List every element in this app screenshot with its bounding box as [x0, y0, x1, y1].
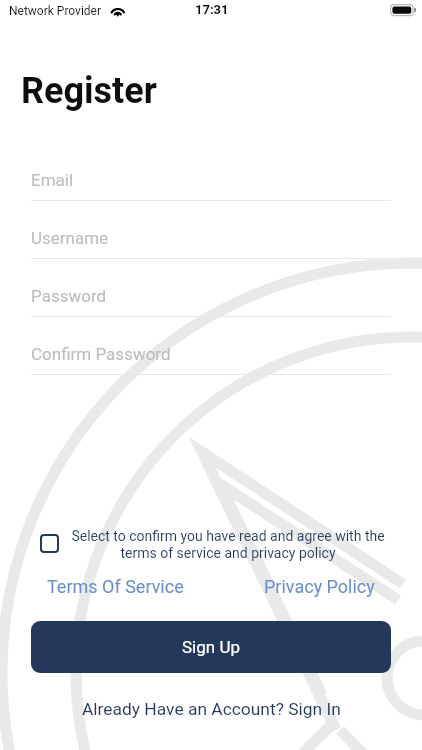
button[interactable]: Agree checkbox — [0, 524, 422, 562]
button[interactable]: Privacy Policy — [264, 576, 375, 597]
button[interactable]: Username — [31, 217, 391, 275]
button[interactable]: Password — [31, 275, 391, 333]
button[interactable]: Email — [31, 159, 391, 217]
staticText: Password — [31, 286, 107, 306]
staticText: Username — [31, 228, 109, 248]
staticText: Select to confirm you have read and agre… — [71, 528, 385, 562]
button[interactable]: Confirm Password — [31, 333, 391, 391]
button[interactable]: Already Have an Account? Sign In — [82, 699, 341, 719]
button[interactable]: Sign Up — [31, 621, 391, 673]
button[interactable]: Terms Of Service — [47, 576, 184, 597]
staticText: Register — [21, 70, 157, 112]
staticText: Sign Up — [182, 637, 240, 657]
other: Agree checkbox — [40, 534, 59, 553]
staticText: Email — [31, 170, 74, 190]
staticText: Network Provider — [9, 4, 102, 18]
staticText: Confirm Password — [31, 344, 171, 364]
staticText: 17:31 — [195, 2, 229, 17]
